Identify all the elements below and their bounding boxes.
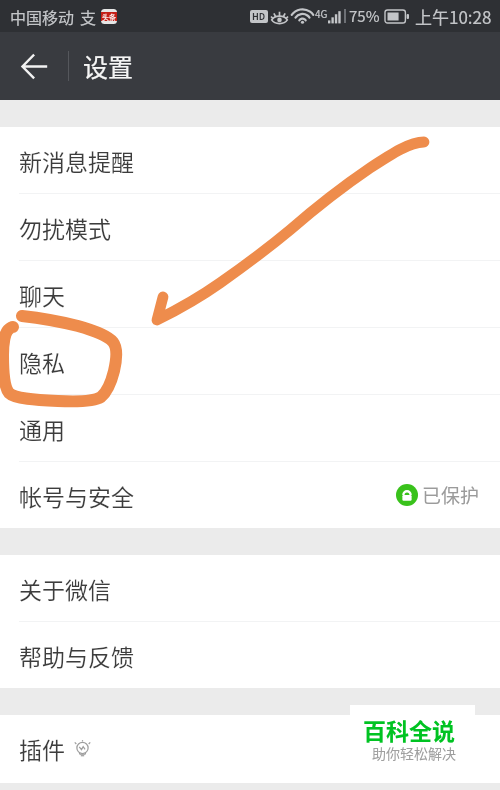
staticText: 通用	[19, 412, 65, 445]
staticText: 设置	[83, 48, 134, 84]
staticText: 关于微信	[19, 572, 111, 605]
button[interactable]: 通用	[0, 395, 500, 462]
button[interactable]: Back	[0, 32, 68, 100]
staticText: 已保护	[422, 481, 480, 509]
staticText: 头条	[102, 12, 116, 21]
staticText: 中国移动	[10, 5, 75, 28]
staticText: 聊天	[19, 278, 65, 311]
button[interactable]: 帮助与反馈	[0, 622, 500, 688]
staticText: 支	[80, 5, 97, 28]
button[interactable]: 新消息提醒	[0, 127, 500, 194]
staticText: 4G	[315, 6, 328, 20]
staticText: 插件	[19, 732, 65, 765]
staticText: 帐号与安全	[19, 479, 134, 512]
staticText: 隐私	[19, 345, 65, 378]
staticText: 百科全说	[363, 713, 455, 746]
staticText: 助你轻松解决	[372, 743, 456, 763]
button[interactable]: 聊天	[0, 261, 500, 328]
staticText: 75%	[349, 5, 380, 27]
button[interactable]: 勿扰模式	[0, 194, 500, 261]
staticText: 上午10:28	[415, 4, 492, 29]
button[interactable]: 关于微信	[0, 555, 500, 622]
button[interactable]: 帐号与安全	[0, 462, 500, 528]
button[interactable]: 插件	[0, 715, 500, 781]
staticText: HD	[252, 10, 266, 23]
staticText: 勿扰模式	[19, 211, 111, 244]
button[interactable]: 隐私	[0, 328, 500, 395]
staticText: 新消息提醒	[19, 144, 134, 177]
staticText: 帮助与反馈	[19, 639, 134, 672]
